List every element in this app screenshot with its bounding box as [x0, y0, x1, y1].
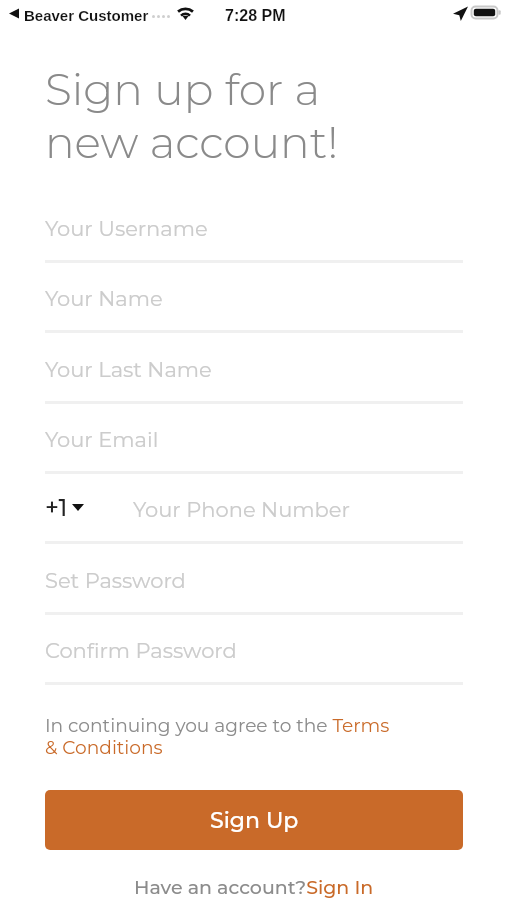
other: Battery full [471, 6, 501, 19]
staticText: Have an account?Sign In [134, 876, 374, 899]
other: Location services [453, 6, 468, 21]
staticText: Your Phone Number [133, 497, 350, 523]
button[interactable]: +1 [45, 493, 84, 522]
button[interactable]: Confirm Password [0, 633, 507, 684]
button[interactable]: Set Password [0, 563, 507, 614]
staticText: Sign Up [210, 807, 299, 834]
other: Choose country code [72, 504, 84, 511]
staticText: Sign up for a new account! [45, 62, 339, 169]
button[interactable]: Have an account?Sign In [134, 876, 374, 899]
button[interactable]: Your Last Name [0, 352, 507, 403]
button[interactable]: Your Email [0, 422, 507, 473]
staticText: Confirm Password [45, 638, 237, 664]
staticText: Your Email [45, 427, 159, 453]
staticText: Beaver Customer [24, 7, 149, 24]
staticText: 7:28 PM [225, 7, 286, 25]
button[interactable]: Sign Up [45, 790, 463, 850]
staticText: Your Last Name [45, 357, 212, 383]
staticText: Set Password [45, 568, 186, 594]
staticText: Your Name [45, 286, 163, 312]
staticText: +1 [45, 493, 68, 522]
button[interactable]: Back to Beaver Customer [6, 4, 151, 28]
button[interactable]: In continuing you agree to the Terms & C… [45, 714, 463, 759]
other: Wi-Fi [175, 5, 196, 20]
button[interactable]: Your Phone Number [110, 492, 463, 543]
button[interactable]: Your Username [0, 211, 507, 262]
button[interactable]: Your Name [0, 281, 507, 332]
staticText: Your Username [45, 216, 208, 242]
staticText: In continuing you agree to the Terms & C… [45, 714, 390, 759]
